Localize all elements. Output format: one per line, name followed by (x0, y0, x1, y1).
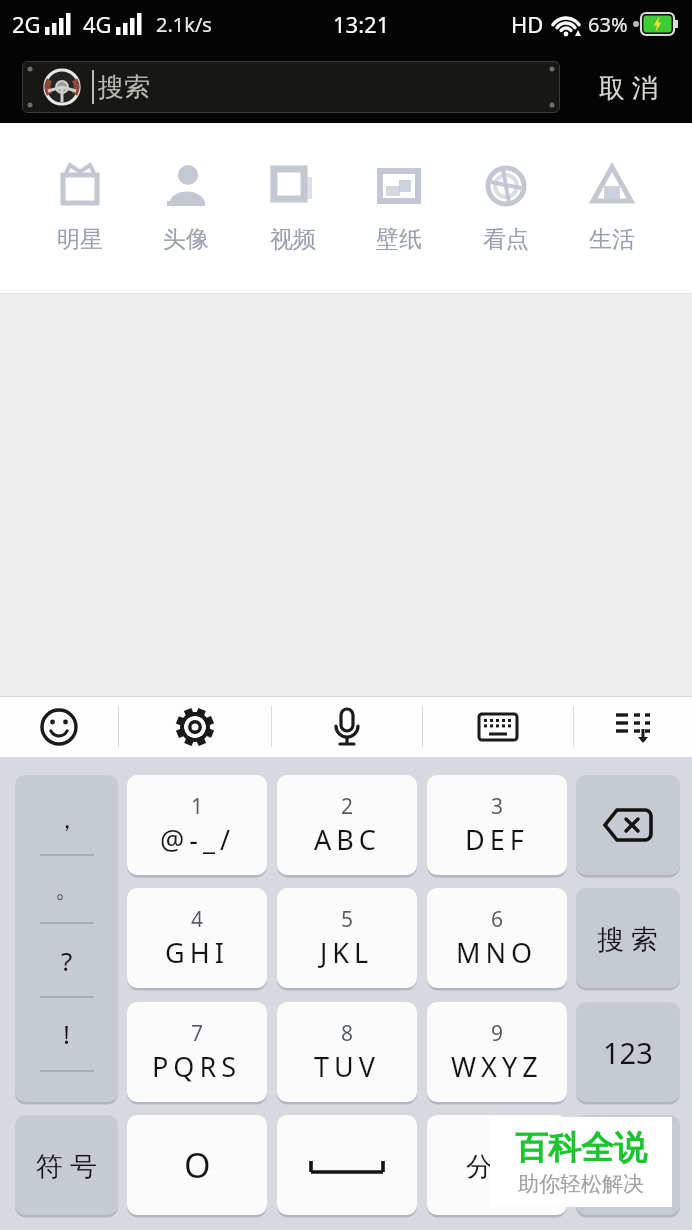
staticText: 7 (191, 1019, 204, 1048)
button[interactable]: 搜 索 (576, 888, 680, 988)
button[interactable]: 6 (427, 888, 567, 988)
button[interactable] (0, 696, 118, 757)
staticText: 5 (341, 905, 354, 934)
staticText: 符 号 (36, 1147, 98, 1184)
button[interactable] (277, 1115, 417, 1215)
button[interactable]: 头像 (159, 159, 213, 258)
staticText: JKL (320, 934, 374, 971)
staticText: 视频 (270, 225, 316, 254)
staticText: 1 (191, 792, 204, 821)
button[interactable] (576, 775, 680, 875)
staticText: 4G (83, 9, 112, 39)
button[interactable]: O (127, 1115, 267, 1215)
button[interactable] (272, 696, 422, 757)
button[interactable] (119, 696, 271, 757)
staticText: 13:21 (333, 9, 390, 39)
staticText: 头像 (163, 225, 209, 254)
staticText: 壁纸 (376, 225, 422, 254)
staticText: 搜 索 (597, 920, 659, 957)
button[interactable]: 生活 (585, 159, 639, 258)
staticText: HD (511, 9, 544, 39)
button[interactable]: 分 词 (427, 1115, 567, 1215)
staticText: ， (55, 805, 79, 835)
staticText: 6 (491, 905, 504, 934)
staticText: @-_/ (160, 821, 235, 858)
staticText: 8 (341, 1019, 354, 1048)
staticText: 63% (588, 11, 628, 38)
button[interactable]: 取 消 (595, 65, 662, 109)
button[interactable]: 1 (127, 775, 267, 875)
button[interactable]: 9 (427, 1002, 567, 1102)
button[interactable]: 3 (427, 775, 567, 875)
staticText: 明星 (57, 225, 103, 254)
button[interactable]: 123 (576, 1002, 680, 1102)
staticText: 3 (491, 792, 504, 821)
staticText: 取 消 (599, 69, 658, 105)
staticText: 2G (12, 9, 41, 39)
staticText: 生活 (589, 225, 635, 254)
staticText: 2 (341, 792, 354, 821)
button[interactable]: 符 号 (15, 1115, 118, 1215)
staticText: 123 (603, 1033, 653, 1072)
staticText: ! (63, 1016, 70, 1051)
staticText: 9 (491, 1019, 504, 1048)
staticText: 。 (55, 874, 79, 904)
staticText: WXYZ (451, 1048, 543, 1085)
button[interactable]: 视频 (266, 159, 320, 258)
button[interactable]: 看点 (479, 159, 533, 258)
button[interactable] (574, 696, 692, 757)
button[interactable]: 明星 (53, 159, 107, 258)
button[interactable]: 8 (277, 1002, 417, 1102)
staticText: 助你轻松解决 (518, 1171, 644, 1197)
staticText: 4 (191, 905, 204, 934)
button[interactable] (423, 696, 573, 757)
button[interactable]: 4 (127, 888, 267, 988)
staticText: 看点 (483, 225, 529, 254)
staticText: PQRS (152, 1048, 242, 1085)
button[interactable]: 2 (277, 775, 417, 875)
button[interactable]: 5 (277, 888, 417, 988)
staticText: 搜索 (98, 71, 150, 104)
button[interactable]: 壁纸 (372, 159, 426, 258)
button[interactable]: 7 (127, 1002, 267, 1102)
staticText: 分 词 (466, 1147, 528, 1184)
button[interactable] (576, 1115, 680, 1215)
staticText: 2.1k/s (156, 11, 212, 38)
staticText: 百科全说 (515, 1127, 647, 1169)
staticText: DEF (465, 821, 529, 858)
button[interactable]: 搜索 (22, 61, 560, 113)
staticText: GHI (165, 934, 229, 971)
staticText: ? (61, 943, 73, 978)
staticText: O (184, 1142, 211, 1188)
staticText: TUV (314, 1048, 380, 1085)
staticText: ABC (314, 821, 381, 858)
staticText: MNO (456, 934, 538, 971)
button[interactable]: ， (15, 775, 118, 1102)
